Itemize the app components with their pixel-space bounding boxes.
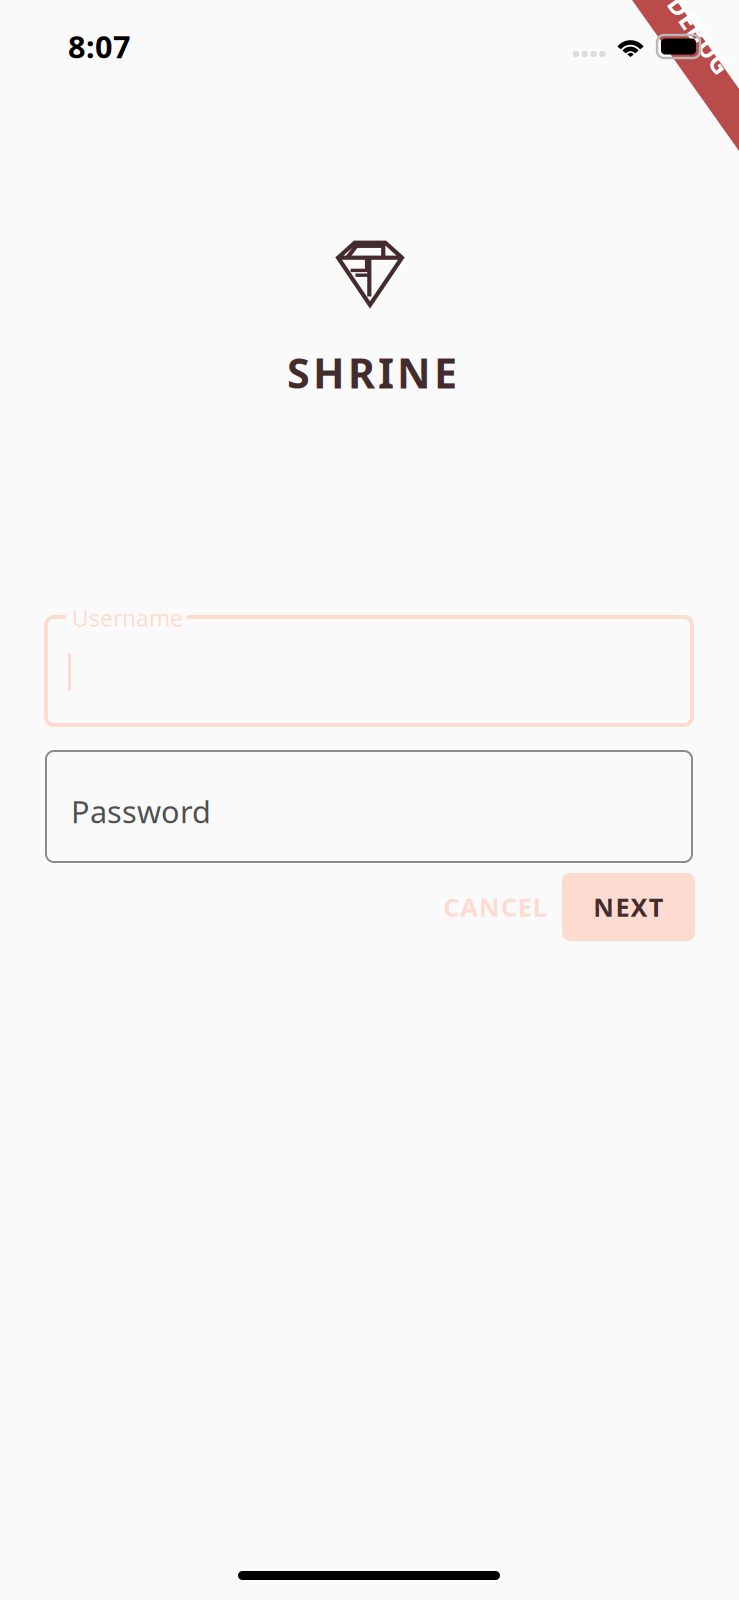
staticText: 8:07 (68, 26, 131, 67)
button[interactable]: N (562, 873, 695, 941)
staticText: N (479, 890, 500, 924)
staticText: D (655, 18, 674, 52)
staticText: Password (71, 791, 211, 832)
staticText: X (631, 890, 648, 924)
staticText: B (689, 18, 706, 52)
staticText: U (706, 18, 725, 52)
staticText: E (674, 18, 688, 52)
staticText: C (501, 890, 517, 924)
staticText: E (615, 890, 629, 924)
staticText: A (460, 890, 478, 924)
staticText: E (518, 890, 532, 924)
staticText: S (287, 345, 310, 400)
staticText: L (533, 890, 547, 924)
staticText: N (593, 890, 614, 924)
staticText: I (378, 345, 394, 400)
staticText: R (348, 345, 375, 400)
button[interactable]: C (427, 873, 563, 941)
staticText: H (313, 345, 345, 400)
staticText: T (649, 890, 664, 924)
staticText: E (434, 345, 457, 400)
staticText: Username (72, 603, 183, 633)
staticText: C (443, 890, 459, 924)
staticText: N (397, 345, 431, 400)
